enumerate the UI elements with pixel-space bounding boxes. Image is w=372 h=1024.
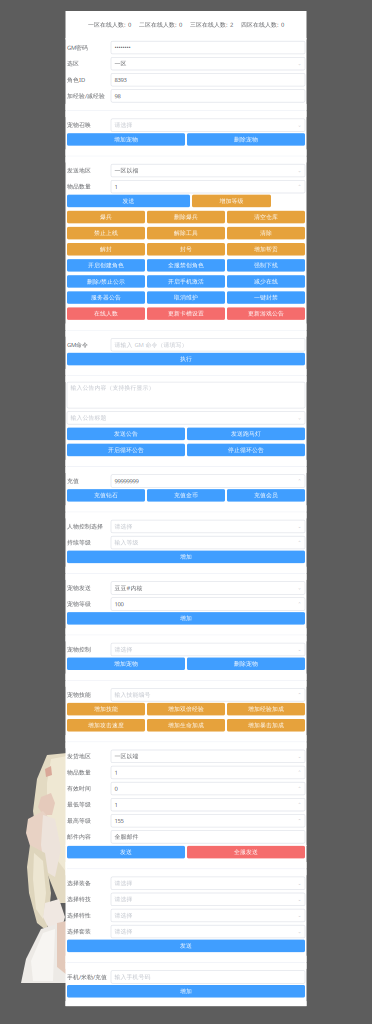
button[interactable]: 增加双倍经验 [147,703,225,715]
button[interactable]: 删除/禁止公示 [67,275,145,288]
button[interactable]: 充值钻石 [67,489,145,502]
staticText: 输入手机号码 [114,973,150,981]
button[interactable]: 解封 [67,243,145,255]
button[interactable]: 发送 [67,846,185,858]
button[interactable]: 全服禁创角色 [147,259,225,272]
button[interactable]: 禁止上线 [67,227,145,239]
staticText: 发送 [120,848,132,856]
button[interactable]: 充值金币 [147,489,225,502]
button[interactable]: 增加 [67,985,305,997]
button[interactable]: 增加等级 [192,195,271,207]
staticText: •••••••• [114,44,130,52]
button[interactable]: 全服发送 [187,846,305,858]
button[interactable]: 增加暴击加成 [227,719,305,731]
button[interactable]: 清空仓库 [227,211,305,223]
staticText: 有效时间 [67,785,91,792]
button[interactable]: 解除工具 [147,227,225,239]
staticText: 宠物控制 [67,646,91,653]
staticText: 请输入 GM 命令（请填写） [114,341,187,349]
staticText: 充值钻石 [94,492,118,499]
staticText: 删除爆兵 [174,213,198,221]
button[interactable]: 执行 [67,353,305,365]
button[interactable]: 发送公告 [67,428,185,440]
staticText: 充值 [67,477,79,485]
staticText: 一区以福 [114,167,138,174]
button[interactable]: 增加 [67,551,305,563]
staticText: GM密码 [67,43,88,51]
staticText: 充值金币 [174,492,198,499]
button[interactable]: 更新卡槽设置 [147,307,225,320]
staticText: 增加生命加成 [168,722,204,729]
button[interactable]: 增加宠物 [67,133,185,146]
button[interactable]: 删除爆兵 [147,211,225,223]
staticText: 取消维护 [174,294,198,301]
button[interactable]: 增加技能 [67,703,145,715]
staticText: 增加技能 [94,705,118,713]
staticText: 选择套装 [67,928,91,935]
button[interactable]: 爆兵 [67,211,145,223]
button[interactable]: 增加 [67,612,305,625]
staticText: 物品数量 [67,769,91,776]
button[interactable]: 删除宠物 [187,133,305,146]
staticText: 一区在线人数: 0 二区在线人数: 0 三区在线人数: 2 四区在线人数: 0 [88,20,284,28]
button[interactable]: 增加攻击速度 [67,719,145,731]
button[interactable]: 开启循环公告 [67,444,185,456]
button[interactable]: 充值会员 [227,489,305,502]
staticText: 1 [114,183,117,191]
staticText: 加经验/减经验 [67,92,105,100]
button[interactable]: 增加生命加成 [147,719,225,731]
staticText: 停止循环公告 [228,446,264,454]
button[interactable]: 开启手机激活 [147,275,225,288]
staticText: 服务器公告 [91,294,121,301]
staticText: 请选择 [114,896,132,903]
staticText: 一区以端 [114,753,138,760]
staticText: ⌄ [297,168,301,173]
button[interactable]: 更新游戏公告 [227,307,305,320]
staticText: 发送跑马灯 [231,430,261,438]
staticText: ⌄ [297,880,301,886]
staticText: 在线人数 [94,310,118,317]
button[interactable]: 清除 [227,227,305,239]
staticText: 全服发送 [234,848,258,856]
button[interactable]: 发送跑马灯 [187,428,305,440]
staticText: ⌄ [297,122,301,128]
staticText: 请选择 [114,523,132,530]
button[interactable]: 一键封禁 [227,291,305,304]
staticText: 发送 [180,942,192,950]
button[interactable]: 增加帮贡 [227,243,305,255]
staticText: ⌄ [297,585,301,591]
button[interactable]: 增加经验加成 [227,703,305,715]
button[interactable]: 封号 [147,243,225,255]
staticText: ⌄ [297,647,301,652]
staticText: ⌄ [297,929,301,934]
staticText: 开启循环公告 [108,446,144,454]
button[interactable]: 删除宠物 [187,657,305,670]
staticText: 开启创建角色 [88,262,124,269]
staticText: 选择特性 [67,912,91,919]
button[interactable]: 服务器公告 [67,291,145,304]
staticText: 删除宠物 [234,136,258,143]
staticText: 最高等级 [67,817,91,824]
button[interactable]: 强制下线 [227,259,305,272]
staticText: 禁止上线 [94,229,118,237]
staticText: 解封 [100,246,112,253]
staticText: 持续等级 [67,539,91,546]
button[interactable]: 在线人数 [67,307,145,320]
button[interactable]: 减少在线 [227,275,305,288]
button[interactable]: 发送 [67,195,190,207]
staticText: 增加等级 [219,197,243,205]
staticText: 更新游戏公告 [248,310,284,317]
staticText: 增加攻击速度 [88,722,124,729]
button[interactable]: 发送 [67,940,305,952]
staticText: 选区 [67,60,79,67]
staticText: 99999999 [114,477,138,485]
button[interactable]: 取消维护 [147,291,225,304]
staticText: ⌃ [297,540,301,545]
button[interactable]: 停止循环公告 [187,444,305,456]
staticText: 封号 [180,246,192,253]
staticText: ⌃ [297,770,301,775]
button[interactable]: 开启创建角色 [67,259,145,272]
staticText: 请选择 [114,121,132,129]
button[interactable]: 增加宠物 [67,657,185,670]
staticText: 开启手机激活 [168,278,204,285]
